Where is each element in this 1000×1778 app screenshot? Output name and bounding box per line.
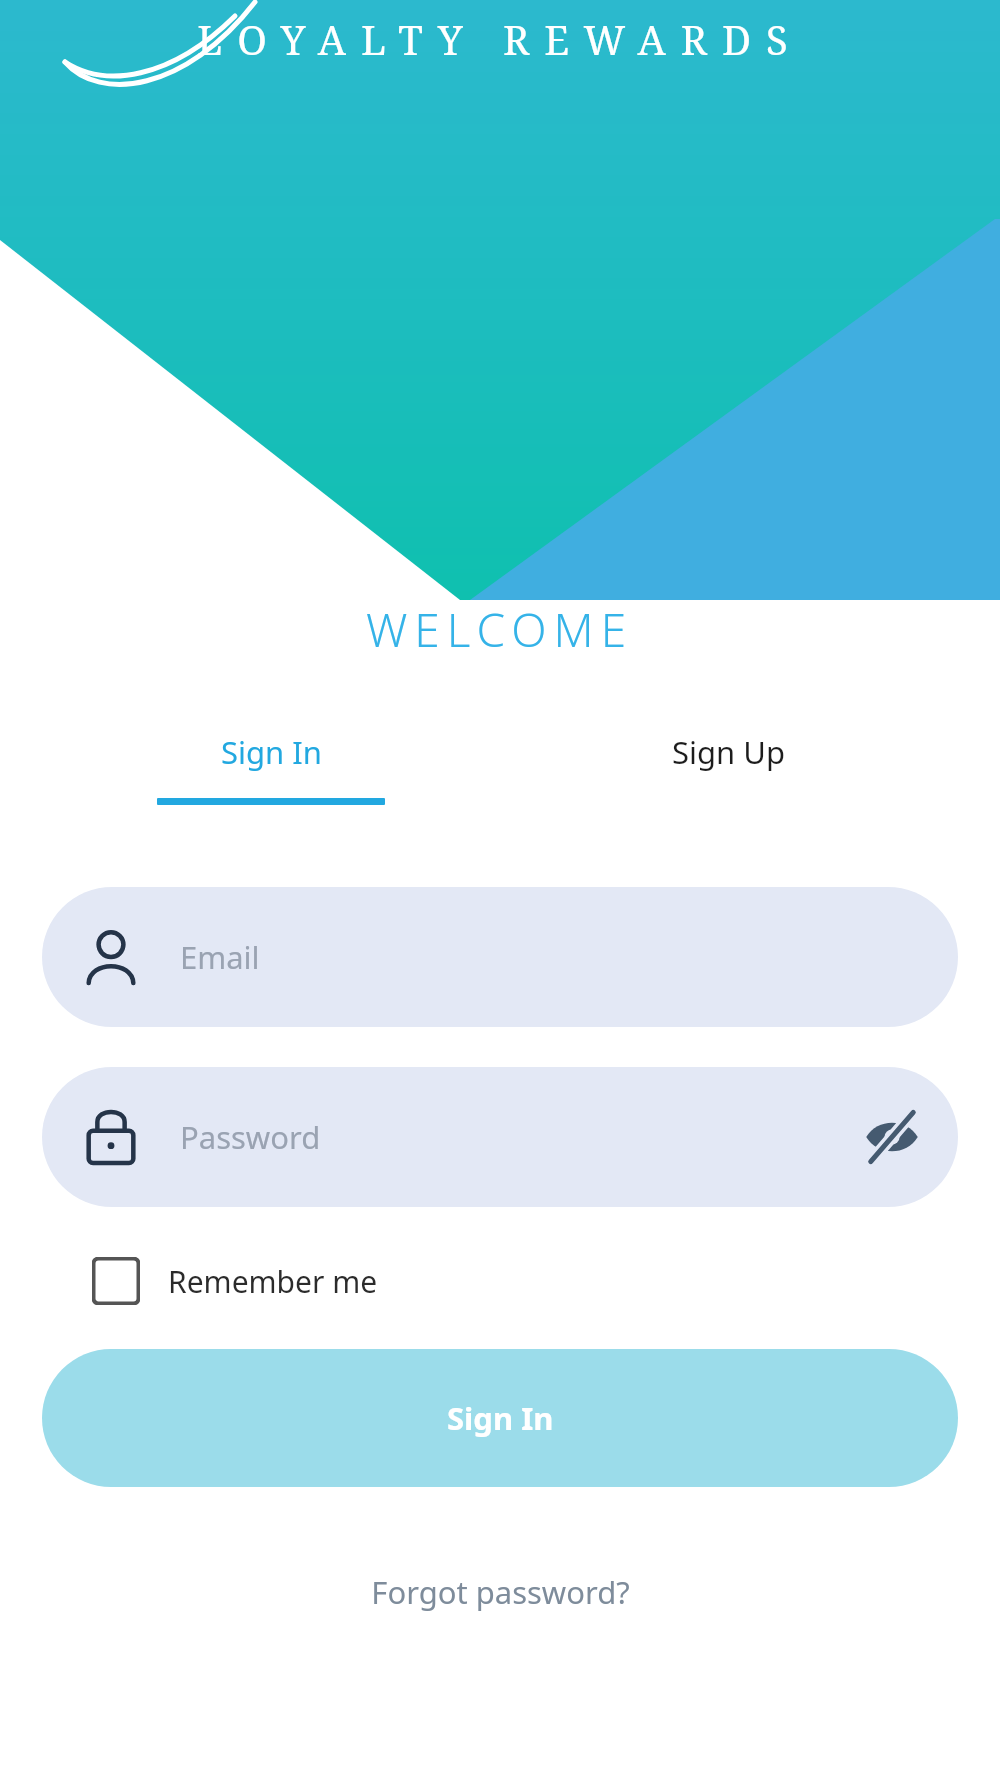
staticText: Sign In (221, 731, 322, 773)
staticText: Remember me (168, 1261, 378, 1302)
button[interactable]: Show password (856, 1101, 928, 1173)
button[interactable]: Remember me (42, 1257, 378, 1305)
button[interactable]: Sign In (42, 731, 500, 805)
button[interactable]: Password (42, 1067, 958, 1207)
button[interactable]: Sign Up (500, 731, 958, 805)
staticText: Password (180, 1116, 856, 1158)
staticText: Sign In (447, 1397, 554, 1439)
button[interactable]: Forgot password? (351, 1565, 650, 1619)
staticText: Email (180, 936, 260, 978)
staticText: WELCOME (366, 598, 634, 661)
button[interactable]: Email (42, 887, 958, 1027)
button[interactable]: Sign In (42, 1349, 958, 1487)
staticText: Forgot password? (371, 1571, 630, 1613)
staticText: LOYALTY REWARDS (0, 12, 1000, 66)
staticText: Sign Up (672, 731, 786, 773)
